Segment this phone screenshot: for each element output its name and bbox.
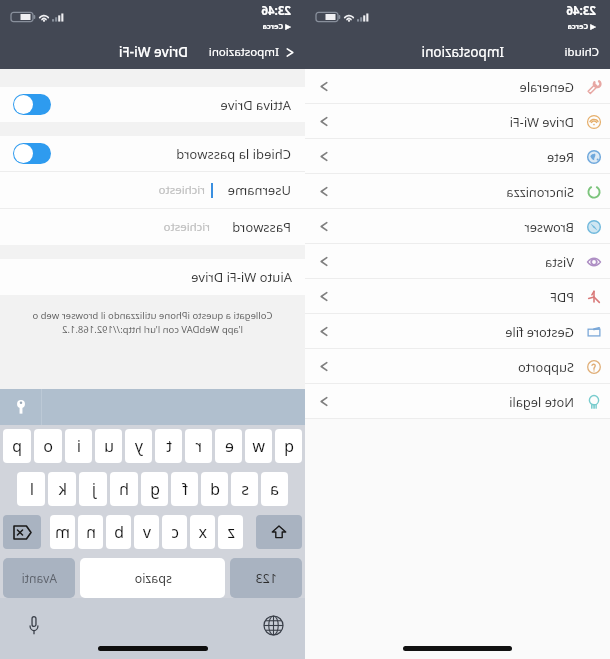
button[interactable]: Backspace — [3, 515, 41, 549]
staticText: Drive Wi-Fi — [509, 113, 574, 130]
staticText: w — [252, 435, 265, 457]
staticText: Vista — [545, 253, 574, 270]
staticText: Browser — [524, 218, 574, 235]
button[interactable]: Generale — [305, 69, 610, 103]
staticText: o — [43, 435, 53, 457]
staticText: Note legali — [509, 393, 574, 410]
staticText: u — [104, 435, 114, 457]
button[interactable]: richiesto — [0, 172, 305, 208]
button[interactable]: w — [245, 429, 272, 463]
staticText: Generale — [519, 78, 574, 95]
button[interactable]: Avanti — [3, 558, 75, 598]
staticText: j — [91, 478, 96, 500]
button[interactable]: 123 — [230, 558, 302, 598]
button[interactable]: Sincronizza — [305, 174, 610, 208]
staticText: c — [171, 521, 179, 543]
button[interactable]: Chiudi — [564, 44, 599, 60]
staticText: f — [182, 478, 188, 500]
staticText: a — [270, 478, 279, 500]
button[interactable]: PDF — [305, 279, 610, 313]
staticText: g — [150, 478, 160, 500]
button[interactable]: v — [134, 515, 159, 549]
button[interactable]: Chiedi la password — [13, 143, 51, 164]
button[interactable]: x — [190, 515, 215, 549]
staticText: y — [134, 435, 143, 457]
staticText: r — [195, 435, 202, 457]
button[interactable]: h — [110, 472, 138, 506]
button[interactable]: f — [171, 472, 198, 506]
button[interactable]: a — [261, 472, 288, 506]
staticText: i — [76, 435, 81, 457]
button[interactable]: d — [201, 472, 228, 506]
button[interactable]: n — [78, 515, 103, 549]
staticText: 123 — [255, 570, 277, 587]
button[interactable]: e — [215, 429, 242, 463]
button[interactable]: z — [218, 515, 243, 549]
staticText: ◀ Cerca — [262, 21, 291, 31]
staticText: k — [58, 478, 67, 500]
button[interactable]: k — [48, 472, 76, 506]
staticText: Attiva Drive — [220, 96, 291, 114]
button[interactable]: spazio — [80, 558, 225, 598]
staticText: 23:46 — [261, 3, 291, 19]
staticText: l — [29, 478, 34, 500]
button[interactable]: u — [95, 429, 122, 463]
staticText: richiesto — [163, 219, 210, 235]
staticText: m — [55, 521, 70, 543]
staticText: 23:46 — [566, 3, 596, 19]
staticText: Avanti — [21, 570, 57, 586]
staticText: d — [210, 478, 220, 500]
button[interactable]: Shift — [256, 515, 302, 549]
staticText: Username — [227, 181, 291, 199]
button[interactable]: o — [34, 429, 62, 463]
staticText: z — [227, 521, 235, 543]
button[interactable]: Language — [262, 614, 284, 636]
button[interactable]: Note legali — [305, 384, 610, 418]
staticText: Rete — [546, 148, 574, 165]
button[interactable]: t — [155, 429, 182, 463]
button[interactable]: b — [106, 515, 131, 549]
staticText: PDF — [550, 288, 574, 305]
button[interactable]: c — [162, 515, 187, 549]
button[interactable]: Browser — [305, 209, 610, 243]
staticText: Chiedi la password — [176, 145, 291, 163]
button[interactable]: m — [50, 515, 75, 549]
button[interactable]: Attiva Drive — [0, 87, 305, 122]
staticText: Password — [232, 218, 291, 236]
button[interactable]: Impostazioni — [208, 44, 294, 60]
staticText: Sincronizza — [506, 183, 574, 200]
button[interactable]: Dictation — [23, 614, 45, 636]
button[interactable]: Rete — [305, 139, 610, 173]
staticText: Drive Wi-Fi — [118, 43, 188, 61]
staticText: Supporto — [517, 358, 574, 375]
button[interactable]: Chiedi la password — [0, 136, 305, 171]
button[interactable]: j — [79, 472, 107, 506]
button[interactable]: y — [125, 429, 152, 463]
staticText: Impostazioni — [208, 44, 279, 60]
button[interactable]: Aiuto Wi-Fi Drive — [0, 259, 305, 295]
button[interactable]: Password — [0, 389, 41, 425]
staticText: q — [284, 435, 294, 457]
staticText: Aiuto Wi-Fi Drive — [191, 268, 292, 286]
staticText: h — [119, 478, 129, 500]
button[interactable]: i — [65, 429, 92, 463]
button[interactable]: l — [17, 472, 45, 506]
button[interactable]: Drive Wi-Fi — [305, 104, 610, 138]
button[interactable]: Supporto — [305, 349, 610, 383]
staticText: Impostazioni — [421, 43, 504, 61]
button[interactable]: s — [231, 472, 258, 506]
button[interactable]: Vista — [305, 244, 610, 278]
button[interactable]: Gestore file — [305, 314, 610, 348]
staticText: x — [198, 521, 207, 543]
staticText: n — [86, 521, 96, 543]
staticText: ◀ Cerca — [567, 21, 596, 31]
button[interactable]: richiesto — [0, 209, 305, 245]
staticText: richiesto — [158, 182, 205, 198]
staticText: e — [224, 435, 234, 457]
button[interactable]: r — [185, 429, 212, 463]
button[interactable]: q — [275, 429, 302, 463]
button[interactable]: Attiva Drive — [13, 94, 51, 115]
staticText: t — [166, 435, 172, 457]
button[interactable]: g — [141, 472, 168, 506]
button[interactable]: p — [3, 429, 31, 463]
